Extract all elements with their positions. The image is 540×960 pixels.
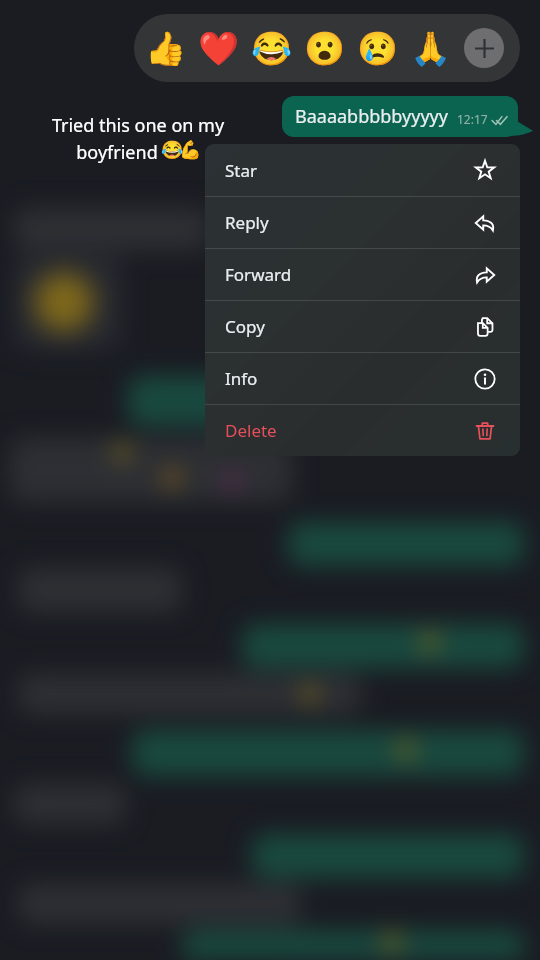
staticText: Delete <box>225 419 277 442</box>
staticText: Tried this one on my <box>39 113 237 138</box>
button[interactable]: Copy <box>205 301 520 352</box>
button[interactable]: Forward <box>205 249 520 300</box>
button[interactable]: Reply <box>205 197 520 248</box>
staticText: Baaaabbbbbyyyyy <box>295 104 448 129</box>
staticText: boyfriend <box>39 140 195 165</box>
button[interactable]: Star <box>205 144 520 196</box>
button[interactable]: Crying <box>357 28 397 68</box>
staticText: Reply <box>225 211 269 234</box>
staticText: Forward <box>225 263 292 286</box>
button[interactable]: Thumbs up <box>145 28 185 68</box>
button[interactable]: Info <box>205 353 520 404</box>
staticText: Star <box>225 159 258 182</box>
staticText: Info <box>225 367 258 390</box>
button[interactable]: Praying <box>410 28 450 68</box>
button[interactable]: Delete <box>205 405 520 456</box>
button[interactable]: Surprised <box>304 28 344 68</box>
button[interactable]: Laughing <box>251 28 291 68</box>
button[interactable]: More reactions <box>464 28 504 68</box>
staticText: 12:17 <box>457 111 488 127</box>
staticText: Copy <box>225 315 265 338</box>
button[interactable]: Heart <box>198 28 238 68</box>
